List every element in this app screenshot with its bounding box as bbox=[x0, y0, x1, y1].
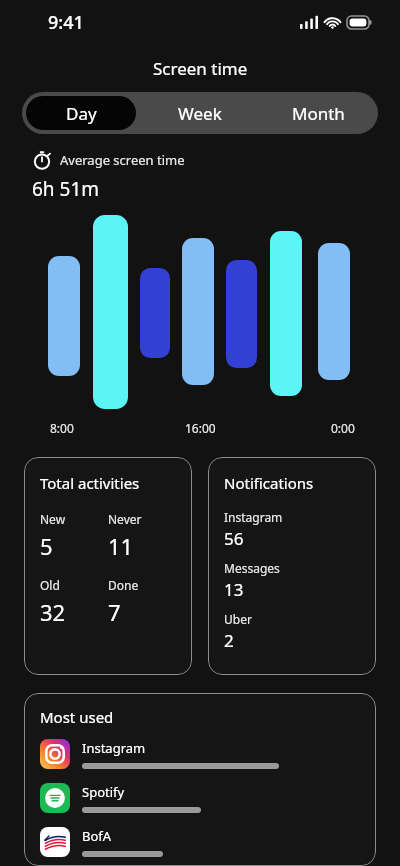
staticText: 5 bbox=[40, 531, 53, 561]
staticText: 6h 51m bbox=[32, 176, 100, 202]
staticText: Month bbox=[292, 102, 345, 125]
button[interactable]: Total activities bbox=[24, 457, 192, 675]
staticText: 7 bbox=[108, 597, 121, 627]
button[interactable]: Notifications bbox=[208, 457, 376, 675]
staticText: Week bbox=[178, 102, 222, 125]
staticText: Average screen time bbox=[60, 151, 185, 169]
staticText: Total activities bbox=[40, 473, 140, 493]
staticText: 0:00 bbox=[331, 420, 355, 436]
button[interactable]: BofA bbox=[40, 827, 360, 857]
staticText: 2 bbox=[224, 629, 234, 652]
staticText: Screen time bbox=[153, 57, 248, 80]
staticText: Old bbox=[40, 577, 60, 593]
staticText: Instagram bbox=[224, 509, 283, 525]
button[interactable]: Instagram bbox=[40, 739, 360, 769]
staticText: 32 bbox=[40, 597, 66, 627]
staticText: BofA bbox=[82, 827, 112, 845]
button[interactable]: Month bbox=[259, 92, 378, 134]
staticText: Notifications bbox=[224, 473, 314, 493]
staticText: Instagram bbox=[82, 739, 146, 757]
staticText: Spotify bbox=[82, 783, 125, 801]
staticText: 9:41 bbox=[48, 10, 84, 35]
staticText: 11 bbox=[108, 531, 134, 561]
button[interactable]: Day bbox=[26, 96, 136, 130]
staticText: 16:00 bbox=[185, 420, 216, 436]
staticText: Never bbox=[108, 511, 142, 527]
staticText: New bbox=[40, 511, 66, 527]
button[interactable]: Week bbox=[140, 92, 259, 134]
staticText: 8:00 bbox=[50, 420, 74, 436]
staticText: Uber bbox=[224, 611, 252, 627]
button[interactable]: Spotify bbox=[40, 783, 360, 813]
staticText: Most used bbox=[40, 707, 114, 727]
staticText: Day bbox=[66, 102, 97, 125]
staticText: 13 bbox=[224, 578, 244, 601]
staticText: Messages bbox=[224, 560, 280, 576]
staticText: Done bbox=[108, 577, 139, 593]
staticText: 56 bbox=[224, 527, 244, 550]
